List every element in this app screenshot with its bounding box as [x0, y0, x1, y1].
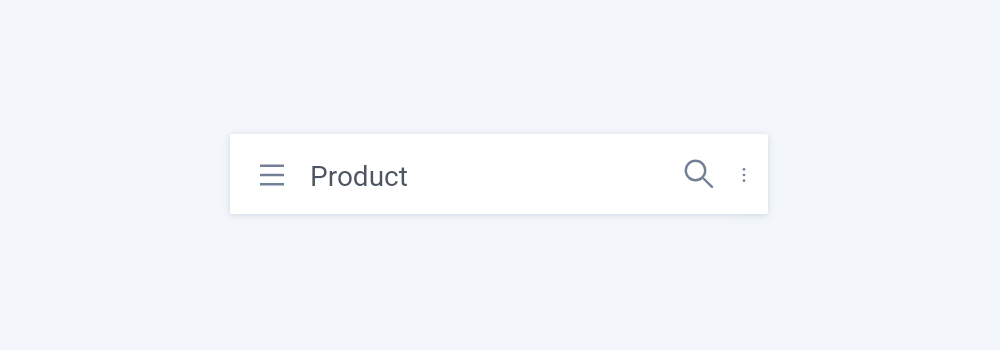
staticText: Product [310, 160, 408, 193]
button[interactable]: More options [720, 151, 768, 199]
button[interactable]: Open navigation menu [248, 151, 296, 199]
button[interactable]: Search [676, 152, 724, 200]
